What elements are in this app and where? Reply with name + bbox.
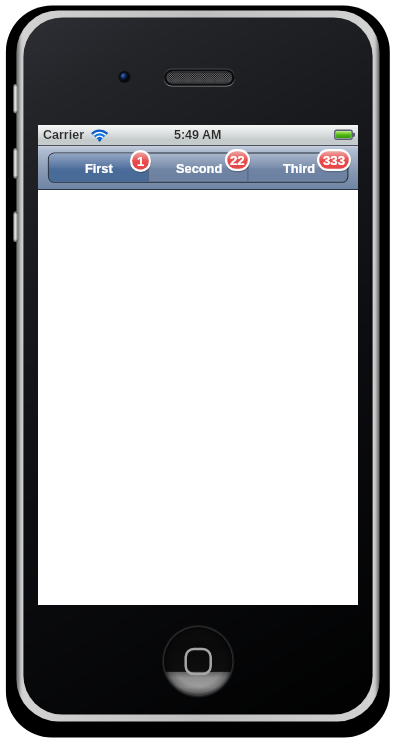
staticText: 5:49 AM [174,128,222,142]
staticText: 22 [230,153,245,168]
staticText: Third [283,161,315,175]
button[interactable]: Second [149,154,249,182]
staticText: Second [176,161,223,175]
button[interactable]: First [49,154,149,182]
staticText: 1 [137,154,145,169]
staticText: 333 [323,153,346,168]
button[interactable]: Third [249,154,349,182]
staticText: Carrier [43,128,84,142]
staticText: First [85,161,113,175]
